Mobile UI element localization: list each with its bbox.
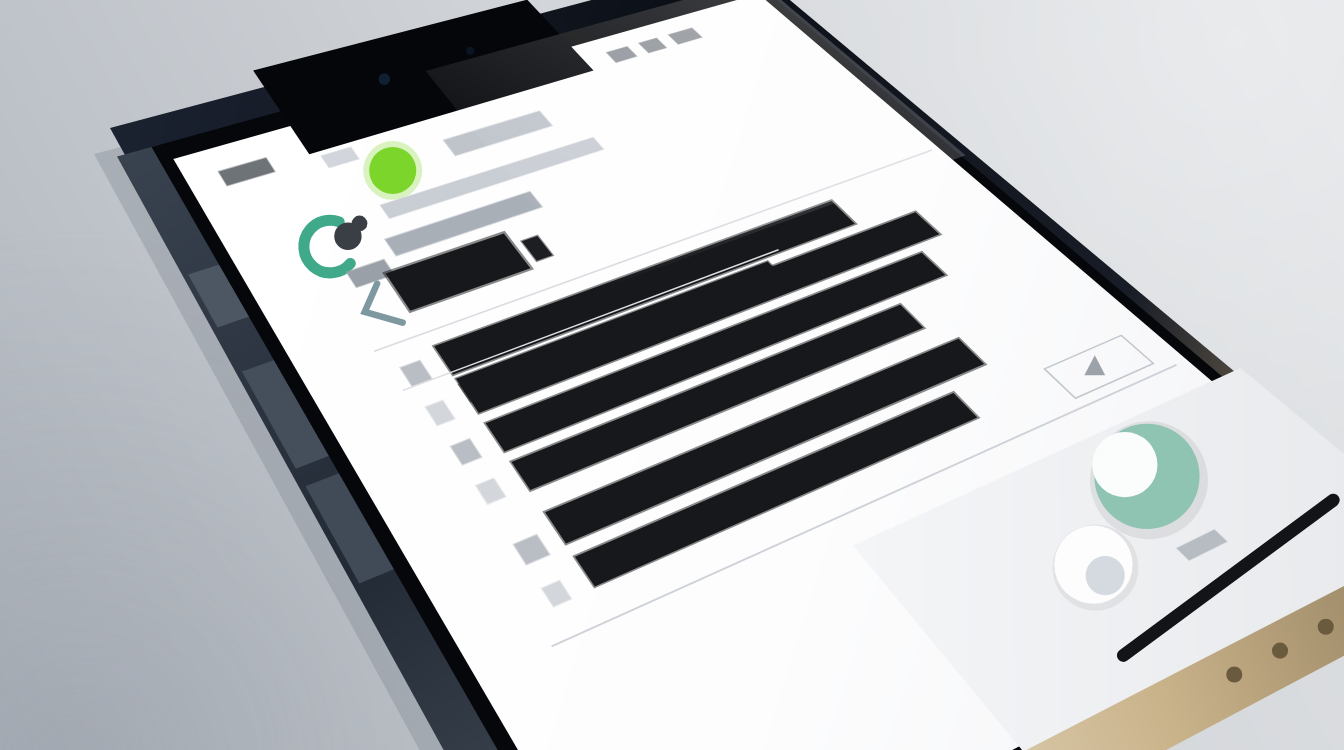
button[interactable]: Phone screen list	[0, 0, 1344, 750]
